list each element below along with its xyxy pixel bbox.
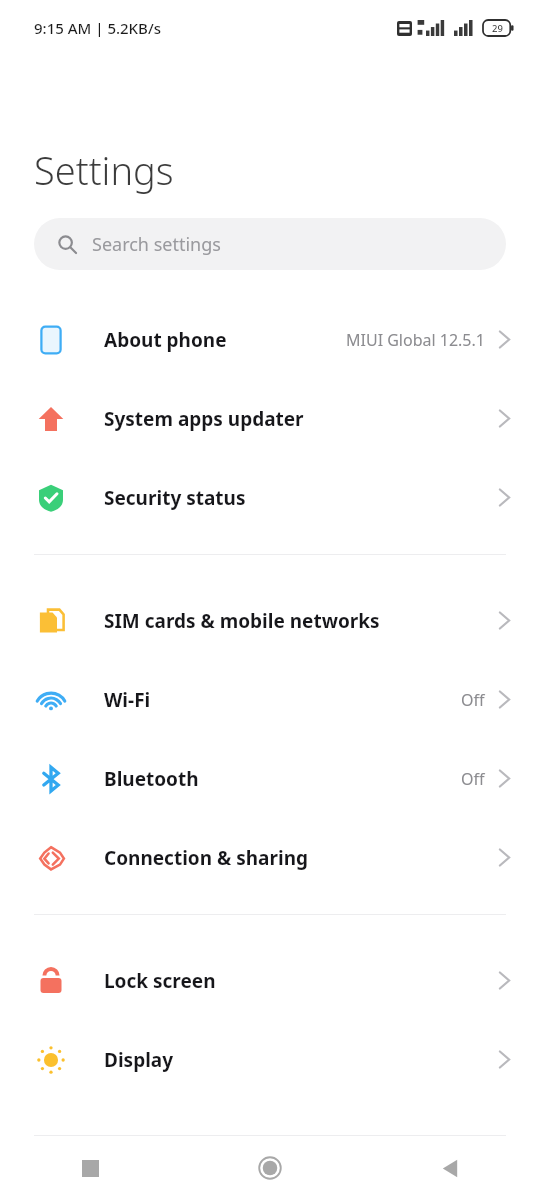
staticText: Display: [104, 1047, 174, 1073]
button[interactable]: Recent apps: [0, 1136, 180, 1200]
staticText: 9:15 AM | 5.2KB/s: [34, 18, 161, 38]
button[interactable]: Search settings: [34, 218, 506, 270]
staticText: Bluetooth: [104, 766, 199, 792]
staticText: Off: [461, 768, 485, 790]
button[interactable]: Home: [180, 1136, 360, 1200]
staticText: MIUI Global 12.5.1: [346, 329, 485, 351]
button[interactable]: Bluetooth: [0, 739, 540, 818]
staticText: 29: [492, 22, 503, 35]
button[interactable]: Back: [360, 1136, 540, 1200]
button[interactable]: Lock screen: [0, 941, 540, 1020]
staticText: SIM cards & mobile networks: [104, 608, 380, 634]
button[interactable]: System apps updater: [0, 379, 540, 458]
staticText: Off: [461, 689, 485, 711]
staticText: Lock screen: [104, 968, 216, 994]
staticText: Search settings: [92, 232, 221, 257]
button[interactable]: SIM cards & mobile networks: [0, 581, 540, 660]
staticText: Security status: [104, 485, 246, 511]
staticText: Wi-Fi: [104, 687, 151, 713]
button[interactable]: About phone: [0, 300, 540, 379]
button[interactable]: Security status: [0, 458, 540, 537]
staticText: Settings: [34, 144, 174, 196]
staticText: About phone: [104, 327, 227, 353]
staticText: Connection & sharing: [104, 845, 309, 871]
staticText: System apps updater: [104, 406, 304, 432]
button[interactable]: Wi-Fi: [0, 660, 540, 739]
button[interactable]: Display: [0, 1020, 540, 1099]
button[interactable]: Connection & sharing: [0, 818, 540, 897]
